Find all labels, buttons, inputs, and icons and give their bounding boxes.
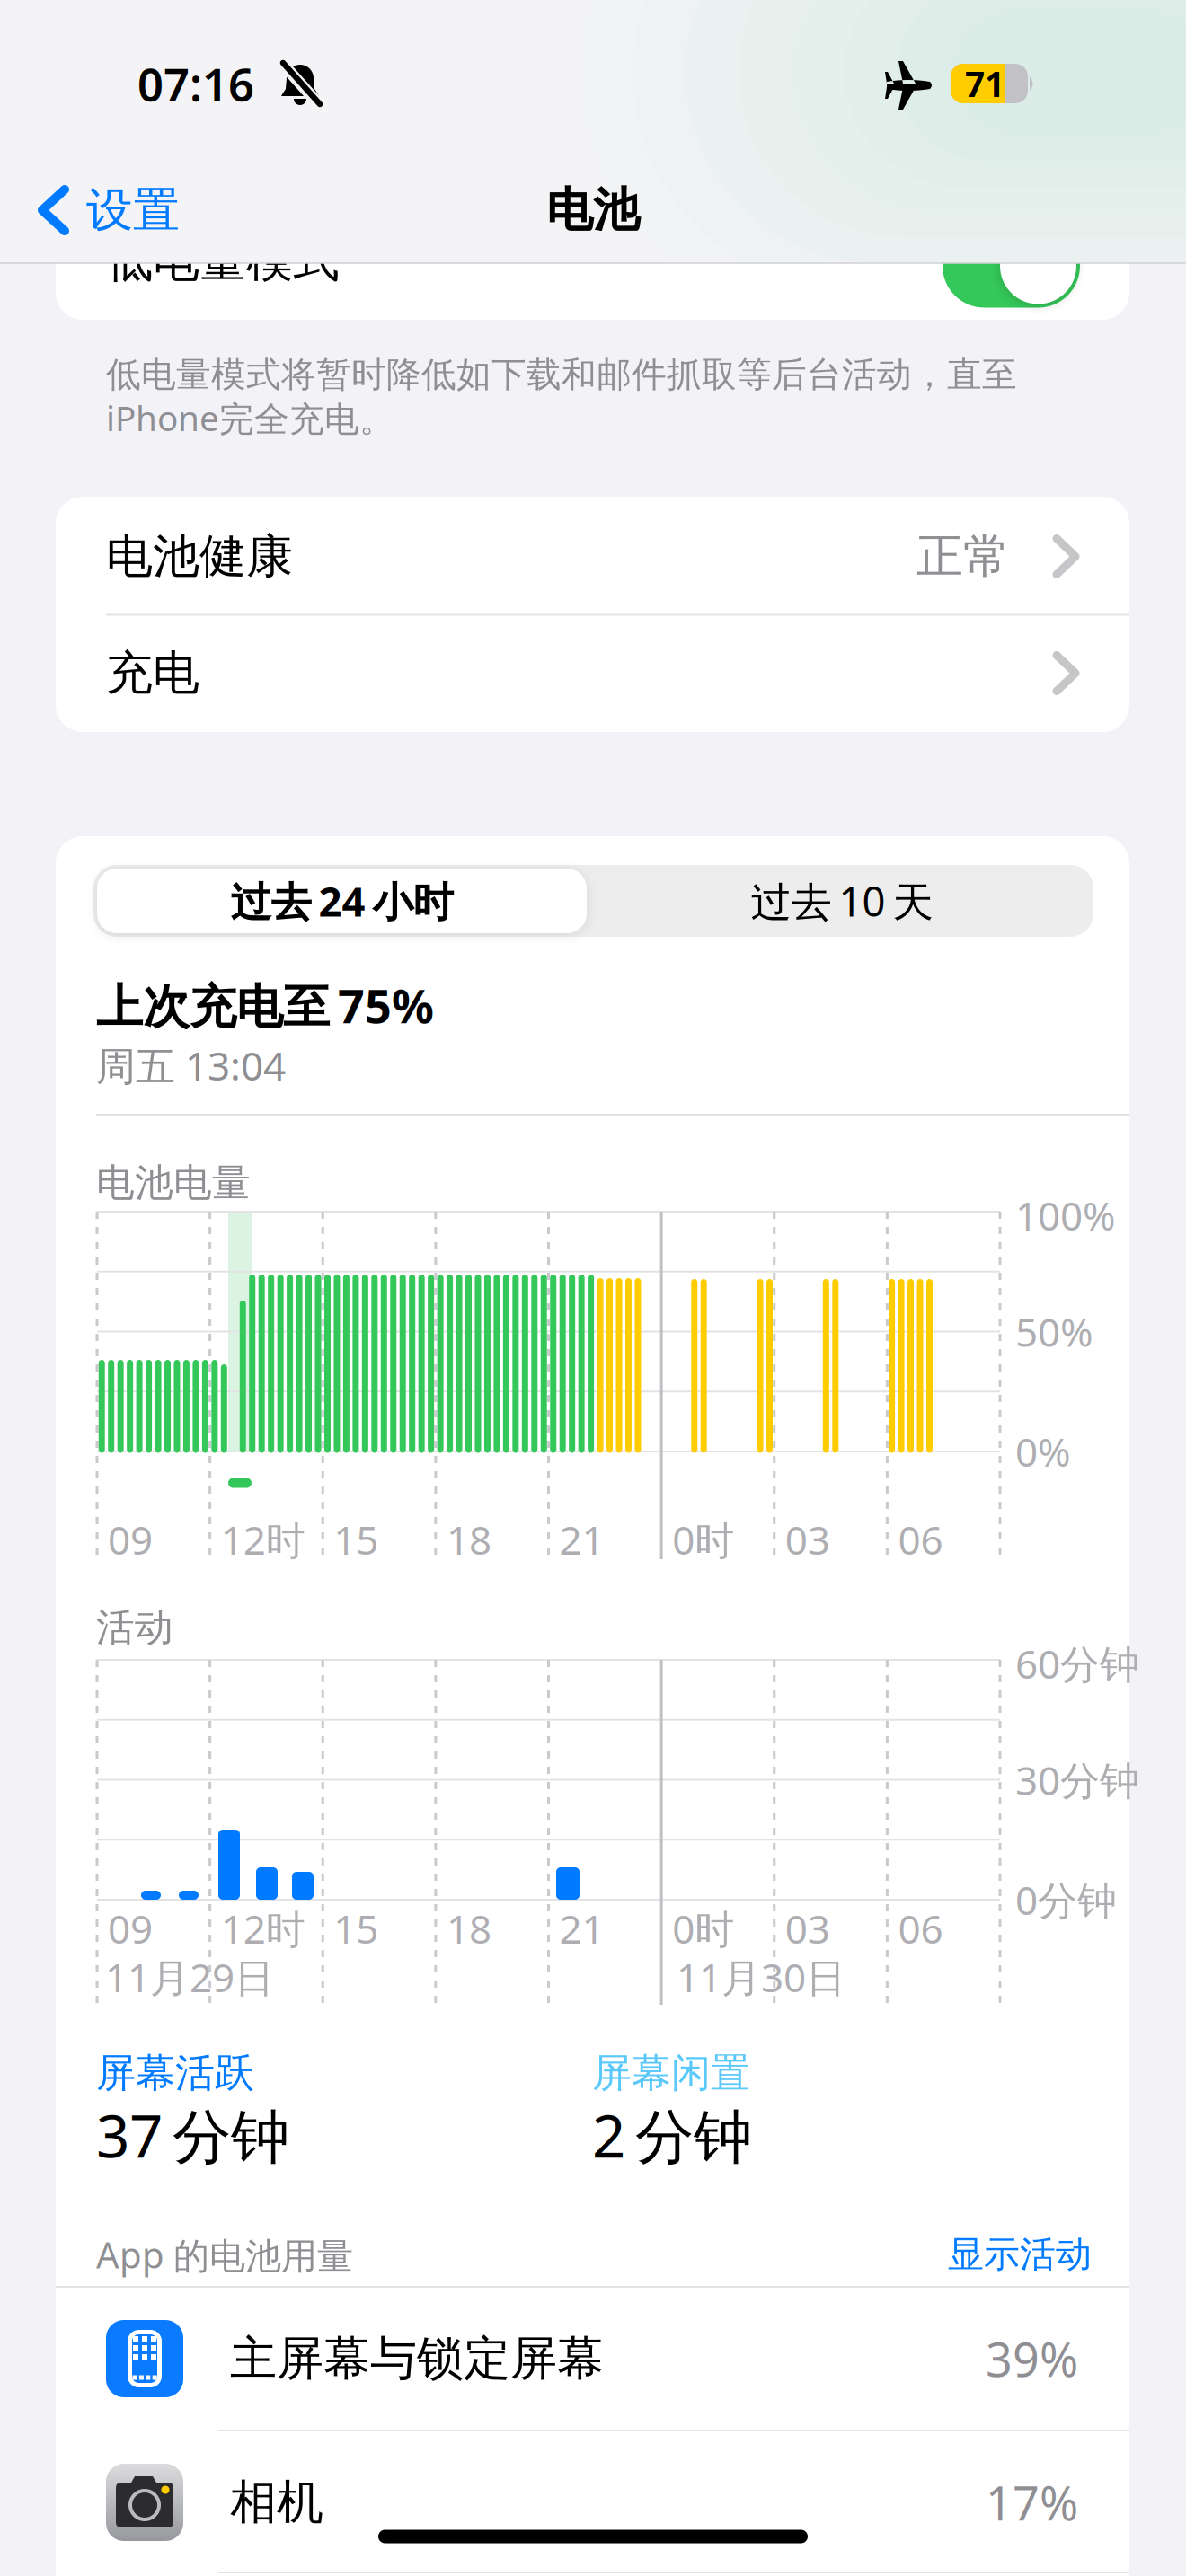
staticText: 周五 13:04 [96, 1039, 286, 1091]
staticText: 充电 [106, 645, 199, 702]
button[interactable]: 过去 10 天 [592, 865, 1092, 937]
staticText: 2 分钟 [592, 2096, 752, 2174]
staticText: 上次充电至 75% [96, 974, 434, 1036]
staticText: 03 [785, 1513, 830, 1566]
staticText: 18 [446, 1513, 491, 1566]
staticText: 相机 [230, 2474, 323, 2531]
staticText: 显示活动 [948, 2232, 1092, 2276]
staticText: 60分钟 [1015, 1637, 1139, 1690]
staticText: 过去 10 天 [751, 874, 933, 928]
button[interactable]: 相机 [56, 2430, 1129, 2574]
staticText: 18 [446, 1902, 491, 1955]
staticText: 0时 [672, 1902, 734, 1955]
staticText: 屏幕闲置 [592, 2049, 750, 2097]
button[interactable]: 电池健康 [56, 497, 1129, 615]
staticText: 正常 [916, 528, 1010, 585]
staticText: 低电量模式将暂时降低如下载和邮件抓取等后台活动，直至 [106, 353, 1017, 396]
staticText: 0% [1015, 1425, 1071, 1478]
staticText: 电池电量 [96, 1159, 251, 1206]
staticText: 电池 [546, 182, 640, 239]
staticText: 12时 [221, 1902, 305, 1955]
staticText: 06 [898, 1513, 943, 1566]
button[interactable]: 过去 24 小时 [97, 869, 587, 933]
staticText: 09 [108, 1513, 153, 1566]
staticText: App 的电池用量 [96, 2230, 353, 2278]
button[interactable]: 设置 [32, 184, 248, 236]
staticText: 电池健康 [106, 528, 293, 585]
staticText: 15 [334, 1513, 378, 1566]
staticText: 屏幕活跃 [96, 2049, 254, 2097]
staticText: 07:16 [137, 53, 254, 114]
staticText: 活动 [96, 1604, 173, 1651]
staticText: 12时 [221, 1513, 305, 1566]
staticText: 过去 24 小时 [230, 874, 453, 928]
staticText: iPhone完全充电。 [106, 394, 394, 441]
staticText: 03 [785, 1902, 830, 1955]
button[interactable]: 主屏幕与锁定屏幕 [56, 2287, 1129, 2430]
staticText: 21 [559, 1902, 604, 1955]
staticText: 主屏幕与锁定屏幕 [230, 2330, 604, 2387]
staticText: 11月30日 [677, 1951, 845, 2003]
staticText: 11月29日 [105, 1951, 274, 2003]
staticText: 71 [965, 60, 1005, 107]
staticText: 30分钟 [1015, 1754, 1139, 1806]
staticText: 0分钟 [1015, 1873, 1117, 1926]
staticText: 39% [986, 2328, 1078, 2390]
staticText: 低电量模式 [106, 232, 340, 289]
staticText: 设置 [86, 182, 180, 239]
staticText: 06 [898, 1902, 943, 1955]
staticText: 37 分钟 [96, 2096, 289, 2174]
staticText: 09 [108, 1902, 153, 1955]
staticText: 50% [1015, 1305, 1093, 1358]
button[interactable]: 显示活动 [912, 2228, 1128, 2281]
staticText: 15 [334, 1902, 378, 1955]
staticText: 21 [559, 1513, 604, 1566]
button[interactable]: 充电 [56, 615, 1129, 732]
staticText: 17% [986, 2471, 1078, 2533]
staticText: 100% [1015, 1189, 1116, 1241]
staticText: 0时 [672, 1513, 734, 1566]
button[interactable]: 低电量模式 [943, 224, 1080, 308]
